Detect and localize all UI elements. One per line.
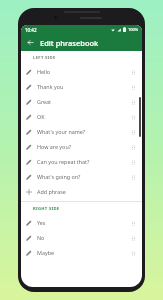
staticText: Great — [37, 98, 128, 105]
staticText: 10:42 — [25, 27, 37, 33]
button[interactable]: Great — [21, 94, 142, 109]
staticText: Can you repeat that? — [37, 158, 128, 165]
button[interactable]: What's your name? — [21, 124, 142, 139]
staticText: Hello — [37, 68, 128, 75]
button[interactable]: Hello — [21, 64, 142, 79]
staticText: Thank you — [37, 83, 128, 90]
button[interactable]: Add phrase — [21, 184, 142, 199]
staticText: RIGHT SIDE — [33, 206, 60, 212]
staticText: Yes — [37, 219, 128, 226]
staticText: Edit phrasebook — [40, 38, 99, 48]
button[interactable]: Back — [24, 36, 37, 49]
staticText: 100% — [128, 27, 139, 32]
staticText: How are you? — [37, 143, 128, 150]
staticText: Add phrase — [37, 188, 142, 195]
button[interactable]: Can you repeat that? — [21, 154, 142, 169]
staticText: No — [37, 234, 128, 241]
button[interactable]: OK — [21, 109, 142, 124]
button[interactable]: What's going on? — [21, 169, 142, 184]
button[interactable]: No — [21, 230, 142, 245]
button[interactable]: Maybe — [21, 245, 142, 260]
staticText: OK — [37, 113, 128, 120]
button[interactable]: Thank you — [21, 79, 142, 94]
button[interactable]: Yes — [21, 215, 142, 230]
button[interactable]: How are you? — [21, 139, 142, 154]
staticText: LEFT SIDE — [33, 55, 56, 61]
staticText: Maybe — [37, 249, 128, 256]
staticText: What's your name? — [37, 128, 128, 135]
staticText: What's going on? — [37, 173, 128, 180]
